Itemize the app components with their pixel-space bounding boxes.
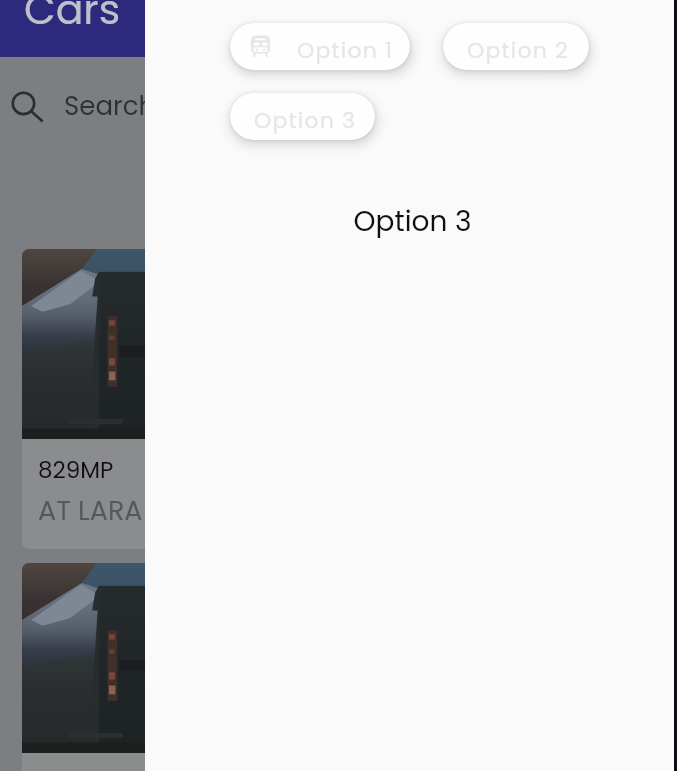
- staticText: Cars: [24, 0, 121, 38]
- staticText: Option 3: [148, 202, 677, 241]
- other: Search: [12, 92, 43, 123]
- staticText: Option 1: [297, 35, 394, 66]
- button[interactable]: Option 2: [443, 23, 589, 70]
- staticText: Option 3: [254, 105, 357, 136]
- button[interactable]: 829MP: [22, 249, 252, 549]
- button[interactable]: Option 3: [230, 93, 375, 140]
- staticText: Option 2: [467, 35, 569, 66]
- staticText: Search: [64, 88, 156, 124]
- button[interactable]: [22, 563, 252, 771]
- button[interactable]: Option 1: [230, 23, 410, 70]
- staticText: 829MP: [38, 454, 114, 486]
- staticText: AT LARA: [38, 492, 143, 530]
